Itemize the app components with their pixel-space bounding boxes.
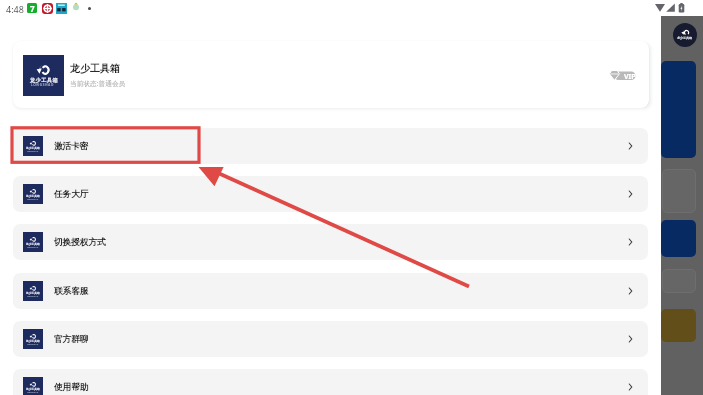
staticText: 龙少工具箱 <box>26 292 40 295</box>
staticText: LONGSHAO <box>27 391 39 393</box>
staticText: 龙少工具箱 <box>30 77 59 83</box>
button[interactable]: 龙少工具箱 <box>13 41 649 108</box>
button[interactable]: 龙少工具箱 <box>13 321 648 357</box>
button[interactable]: 龙少工具箱 <box>13 176 648 212</box>
staticText: 激活卡密 <box>54 141 89 152</box>
staticText: 龙少工具箱 <box>677 36 692 40</box>
staticText: 龙少工具箱 <box>70 62 120 75</box>
staticText: 官方群聊 <box>54 334 89 345</box>
staticText: 龙少工具箱 <box>26 195 40 198</box>
staticText: LONGSHAO <box>31 83 55 87</box>
button[interactable]: 龙少工具箱 <box>13 128 648 164</box>
staticText: LONGSHAO <box>27 150 39 152</box>
staticText: 联系客服 <box>54 286 89 297</box>
staticText: 龙少工具箱 <box>26 388 40 391</box>
staticText: 龙少工具箱 <box>26 340 40 343</box>
staticText: LONGSHAO <box>27 343 39 345</box>
staticText: 任务大厅 <box>54 189 89 200</box>
staticText: 龙少工具箱 <box>26 243 40 246</box>
staticText: 7 <box>30 3 35 13</box>
staticText: 当前状态:普通会员 <box>70 79 126 88</box>
staticText: LONGSHAO <box>27 295 39 297</box>
staticText: LONGSHAO <box>27 198 39 200</box>
staticText: 使用帮助 <box>54 382 89 393</box>
button[interactable]: 龙少工具箱 <box>13 224 648 260</box>
staticText: LONGSHAO <box>27 246 39 248</box>
button[interactable]: 龙少工具箱 <box>13 273 648 309</box>
button[interactable]: App icon <box>673 23 697 47</box>
button[interactable]: 龙少工具箱 <box>13 369 648 395</box>
staticText: 龙少工具箱 <box>26 147 40 150</box>
staticText: VIP <box>624 72 636 82</box>
button[interactable]: VIP membership badge <box>609 70 636 81</box>
staticText: 切换授权方式 <box>54 237 106 248</box>
staticText: 4:48 <box>6 3 24 15</box>
